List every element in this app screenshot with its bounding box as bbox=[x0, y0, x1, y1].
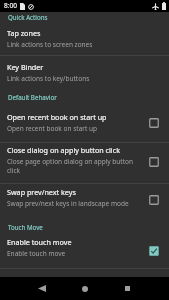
staticText: Link actions to screen zones bbox=[7, 40, 93, 49]
button[interactable]: Open recent book on start up bbox=[0, 108, 169, 142]
staticText: Tap zones bbox=[7, 28, 41, 38]
staticText: Quick Actions bbox=[8, 13, 48, 21]
staticText: Enable touch move bbox=[7, 249, 66, 258]
button[interactable]: Key Binder bbox=[0, 56, 169, 89]
staticText: Key Binder bbox=[7, 62, 44, 72]
staticText: Swap prev/next keys bbox=[7, 187, 76, 197]
button[interactable]: Home bbox=[67, 277, 103, 300]
staticText: Swap prev/next keys in landscape mode bbox=[7, 199, 129, 208]
staticText: Link actions to key/buttons bbox=[7, 74, 90, 83]
staticText: Close dialog on apply button click bbox=[7, 145, 120, 155]
button[interactable]: Tap zones bbox=[0, 28, 169, 55]
staticText: Touch Move bbox=[8, 223, 43, 231]
button[interactable]: Enable touch move bbox=[0, 233, 169, 268]
staticText: 8:00 bbox=[4, 1, 17, 10]
staticText: Open recent book on start up bbox=[7, 124, 98, 133]
button[interactable]: Back bbox=[24, 277, 60, 300]
button[interactable]: Recents bbox=[109, 277, 145, 300]
button[interactable]: Swap prev/next keys bbox=[0, 184, 169, 218]
staticText: Default Behavior bbox=[8, 93, 57, 101]
staticText: Open recent book on start up bbox=[7, 112, 107, 122]
staticText: Enable touch move bbox=[7, 237, 72, 247]
button[interactable]: Close dialog on apply button click bbox=[0, 143, 169, 183]
staticText: Close page option dialog on apply button… bbox=[7, 157, 136, 175]
